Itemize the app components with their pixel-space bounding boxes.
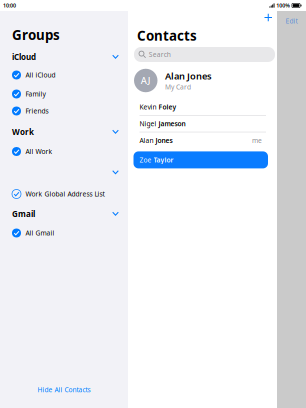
staticText: Edit xyxy=(285,17,297,25)
staticText: Zoe xyxy=(139,155,153,164)
staticText: Jones xyxy=(155,136,172,145)
button[interactable]: Zoe xyxy=(128,151,277,168)
staticText: Work xyxy=(12,127,34,137)
button[interactable]: Nigel xyxy=(128,116,277,132)
button[interactable]: Gmail xyxy=(0,202,128,226)
staticText: 100% xyxy=(276,2,290,9)
button[interactable]: Hide All Contacts xyxy=(0,385,128,408)
staticText: Alan Jones xyxy=(165,70,212,82)
staticText: 10:00 xyxy=(3,2,16,9)
staticText: Search xyxy=(149,50,171,59)
staticText: Friends xyxy=(25,107,48,115)
staticText: Work Global Address List xyxy=(25,190,104,198)
staticText: Kevin xyxy=(139,103,158,111)
staticText: Groups xyxy=(12,26,60,44)
staticText: me xyxy=(252,136,262,145)
staticText: All iCloud xyxy=(25,71,55,79)
button[interactable]: Work Global Address List xyxy=(0,186,128,202)
button[interactable]: Friends xyxy=(0,102,128,120)
staticText: Taylor xyxy=(153,155,173,164)
button[interactable]: All Work xyxy=(0,144,128,159)
button[interactable]: All Gmail xyxy=(0,226,128,240)
staticText: Gmail xyxy=(12,209,35,219)
button[interactable]: All iCloud xyxy=(0,64,128,86)
button[interactable]: Alan xyxy=(128,132,277,148)
button[interactable]: AJ xyxy=(128,62,277,99)
staticText: All Gmail xyxy=(25,229,54,237)
staticText: Alan xyxy=(139,136,155,145)
button[interactable]: Work xyxy=(0,120,128,144)
button[interactable] xyxy=(0,159,128,186)
button[interactable]: Edit xyxy=(277,11,306,31)
staticText: Family xyxy=(25,90,45,98)
staticText: Hide All Contacts xyxy=(37,385,90,394)
staticText: iCloud xyxy=(12,52,36,62)
staticText: AJ xyxy=(141,74,151,87)
staticText: Nigel xyxy=(139,119,158,128)
button[interactable]: Add contact xyxy=(261,11,275,24)
staticText: All Work xyxy=(25,147,52,156)
staticText: My Card xyxy=(165,82,191,91)
staticText: Contacts xyxy=(137,27,197,44)
staticText: Foley xyxy=(158,103,176,111)
button[interactable]: Kevin xyxy=(128,99,277,115)
button[interactable]: iCloud xyxy=(0,50,128,64)
staticText: Jameson xyxy=(158,119,185,128)
button[interactable]: Family xyxy=(0,86,128,102)
